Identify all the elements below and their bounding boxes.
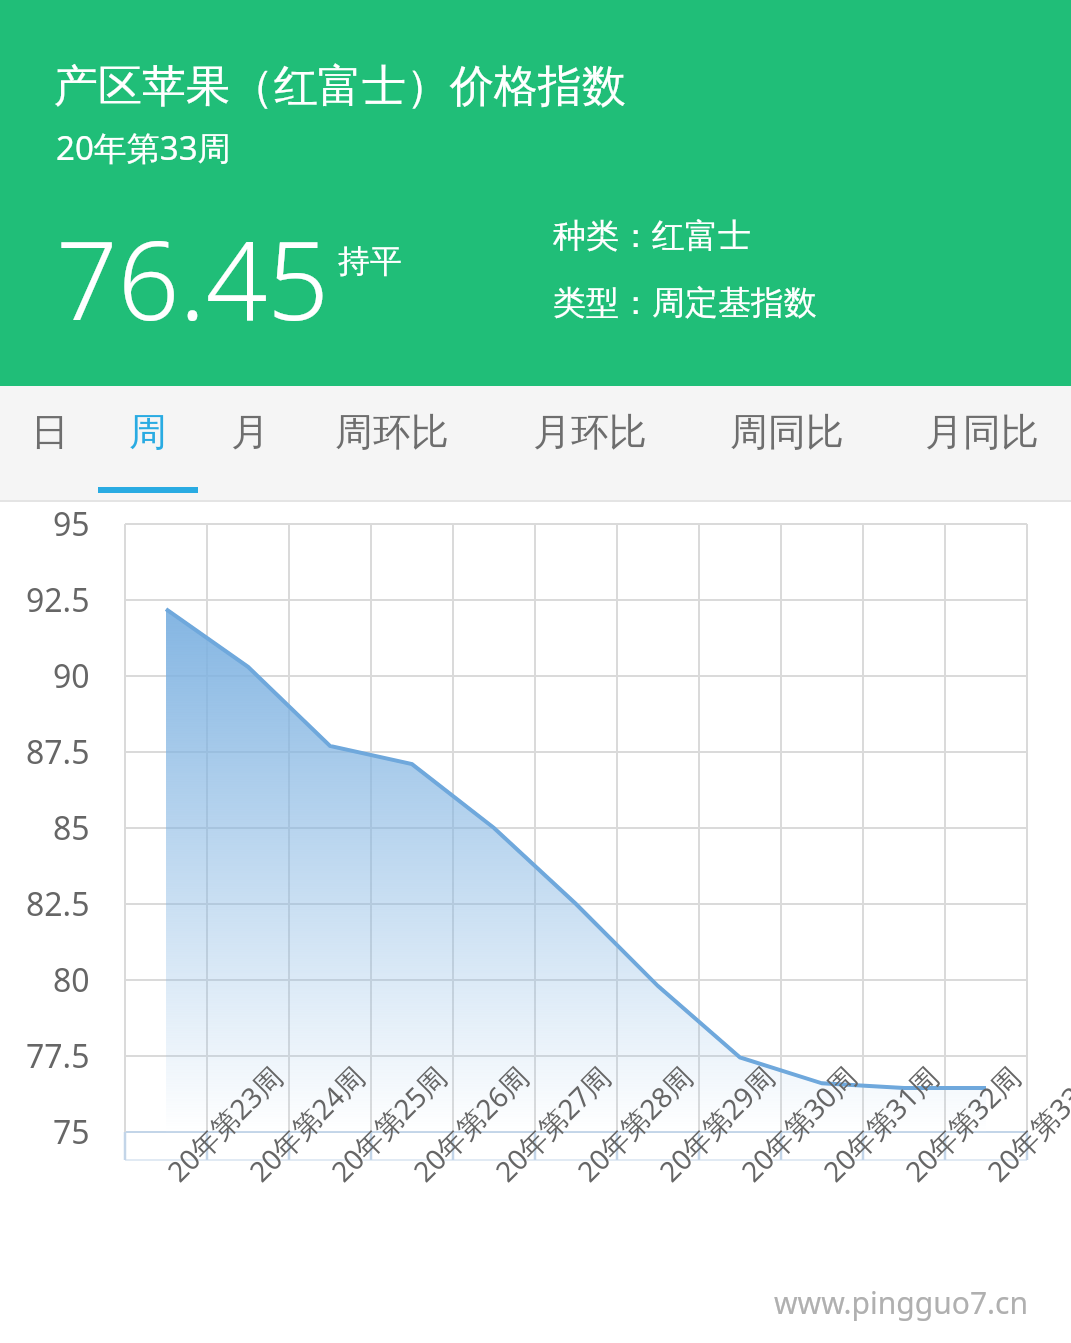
button[interactable]: 日 bbox=[20, 386, 80, 502]
staticText: 月同比 bbox=[925, 408, 1039, 456]
staticText: 持平 bbox=[338, 241, 402, 281]
staticText: 周 bbox=[129, 408, 167, 456]
button[interactable]: 月环比 bbox=[515, 386, 665, 502]
staticText: 周环比 bbox=[335, 408, 449, 456]
button[interactable]: 月同比 bbox=[907, 386, 1057, 502]
staticText: 月环比 bbox=[533, 408, 647, 456]
staticText: 周同比 bbox=[730, 408, 844, 456]
staticText: 种类：红富士 bbox=[553, 215, 751, 257]
staticText: 月 bbox=[231, 408, 269, 456]
staticText: 日 bbox=[31, 408, 69, 456]
button[interactable]: 月 bbox=[220, 386, 280, 502]
staticText: 类型：周定基指数 bbox=[553, 282, 817, 324]
staticText: www.pingguo7.cn bbox=[774, 1282, 1029, 1323]
staticText: 20年第33周 bbox=[56, 125, 231, 170]
button[interactable]: 周同比 bbox=[712, 386, 862, 502]
staticText: 产区苹果（红富士）价格指数 bbox=[54, 59, 626, 114]
button[interactable]: 周 bbox=[118, 386, 178, 502]
button[interactable]: 周环比 bbox=[317, 386, 467, 502]
staticText: 76.45 bbox=[56, 205, 330, 352]
